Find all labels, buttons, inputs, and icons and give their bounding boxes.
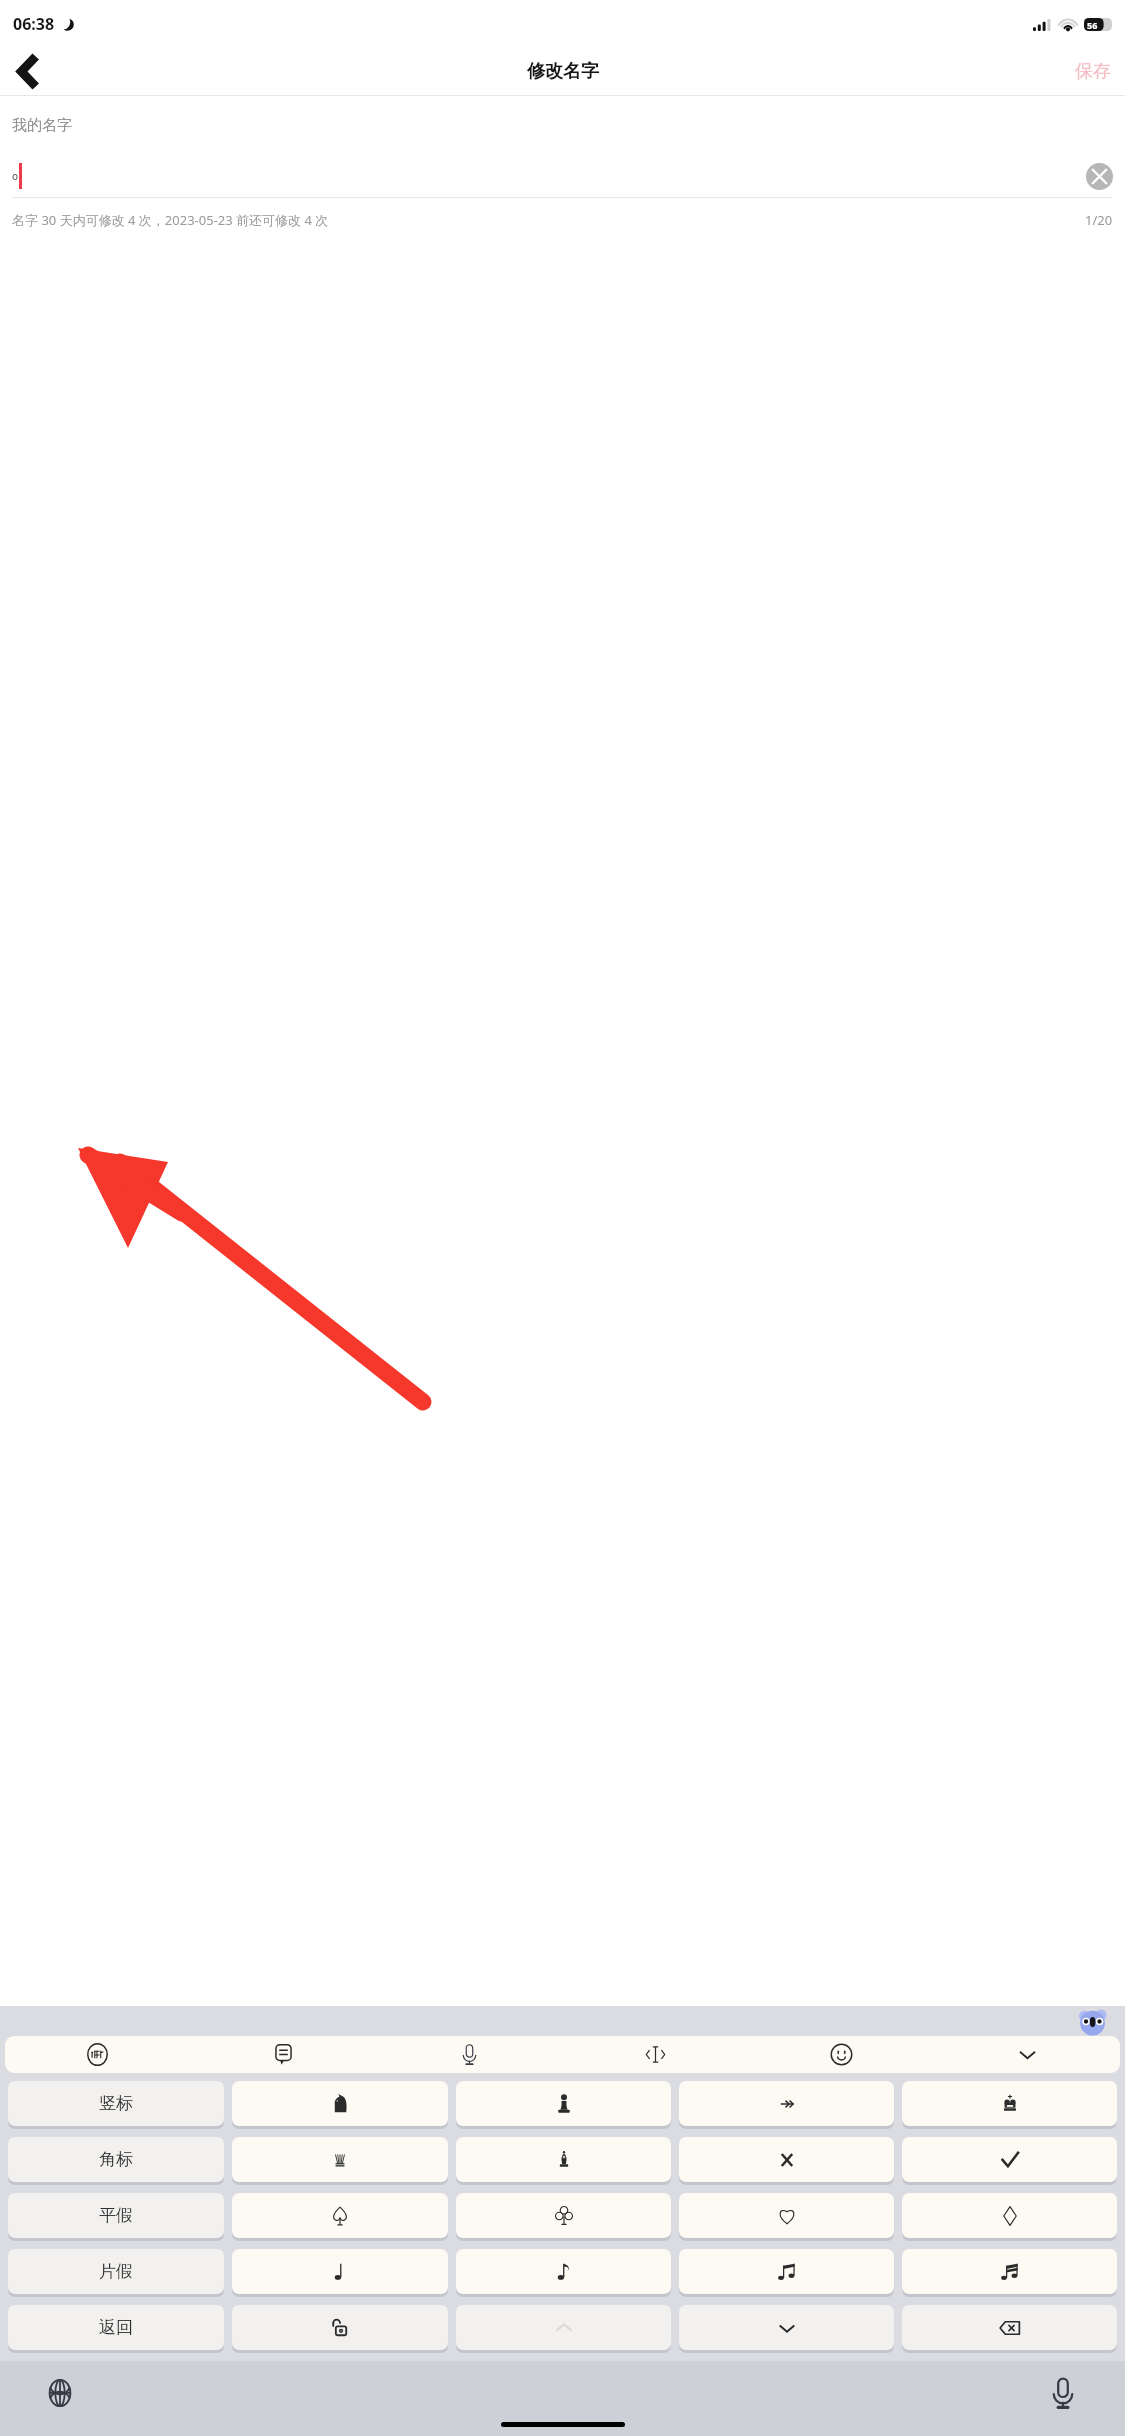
staticText: 56: [1087, 19, 1098, 31]
staticText: 1/20: [1085, 211, 1113, 229]
staticText: 平假: [99, 2205, 133, 2226]
button[interactable]: 保存: [1061, 50, 1125, 93]
button[interactable]: Quarter note: [232, 2249, 448, 2294]
button[interactable]: Next page: [679, 2305, 894, 2350]
button[interactable]: Delete: [902, 2305, 1117, 2350]
button[interactable]: Input method: [5, 2036, 190, 2073]
button[interactable]: Input method avatar: [1079, 2008, 1106, 2035]
staticText: o: [12, 169, 19, 183]
button[interactable]: Arrows: [679, 2081, 894, 2126]
button[interactable]: Club: [456, 2193, 671, 2238]
button[interactable]: 片假: [8, 2249, 224, 2294]
staticText: 修改名字: [527, 60, 599, 83]
button[interactable]: 返回: [8, 2305, 224, 2350]
button[interactable]: 平假: [8, 2193, 224, 2238]
button[interactable]: Emoji: [748, 2036, 934, 2073]
button[interactable]: Dictation: [1043, 2373, 1083, 2413]
button[interactable]: o: [12, 155, 1113, 197]
button[interactable]: King: [902, 2081, 1117, 2126]
button[interactable]: Heart: [679, 2193, 894, 2238]
button[interactable]: Clear text: [1086, 163, 1113, 190]
staticText: 06:38: [13, 13, 55, 35]
button[interactable]: Spade: [232, 2193, 448, 2238]
staticText: 角标: [99, 2149, 133, 2170]
button[interactable]: Diamond: [902, 2193, 1117, 2238]
button[interactable]: Switch language: [40, 2373, 80, 2413]
button[interactable]: Move cursor: [562, 2036, 748, 2073]
button[interactable]: Clipboard: [190, 2036, 376, 2073]
staticText: 我的名字: [12, 116, 72, 135]
button[interactable]: 角标: [8, 2137, 224, 2182]
button[interactable]: Bishop: [456, 2137, 671, 2182]
button[interactable]: 竖标: [8, 2081, 224, 2126]
staticText: 返回: [99, 2317, 133, 2338]
staticText: 保存: [1075, 60, 1111, 83]
button[interactable]: Beamed notes: [679, 2249, 894, 2294]
button[interactable]: Voice input: [376, 2036, 562, 2073]
staticText: 竖标: [99, 2093, 133, 2114]
button[interactable]: Check: [902, 2137, 1117, 2182]
button[interactable]: Eighth note: [456, 2249, 671, 2294]
button[interactable]: Cross: [679, 2137, 894, 2182]
staticText: 名字 30 天内可修改 4 次，2023-05-23 前还可修改 4 次: [12, 211, 329, 229]
button[interactable]: Knight: [232, 2081, 448, 2126]
button[interactable]: Back: [0, 48, 54, 95]
button[interactable]: Hide keyboard: [934, 2036, 1120, 2073]
button[interactable]: Crown: [232, 2137, 448, 2182]
staticText: 片假: [99, 2261, 133, 2282]
button[interactable]: Unlock: [232, 2305, 448, 2350]
button[interactable]: Pawn: [456, 2081, 671, 2126]
button[interactable]: Beamed sixteenth notes: [902, 2249, 1117, 2294]
